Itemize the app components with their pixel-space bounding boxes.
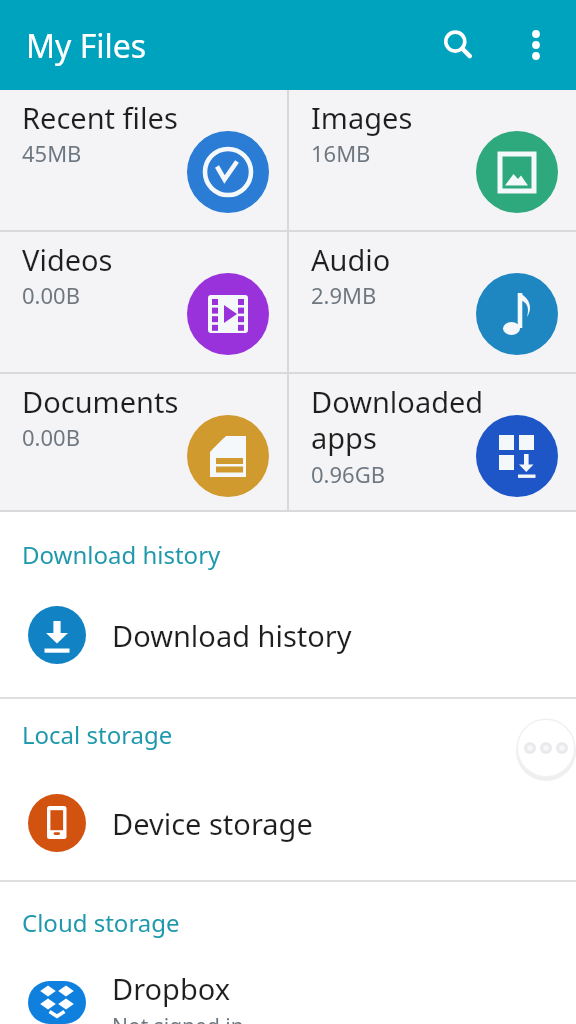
button[interactable]	[434, 21, 482, 69]
button[interactable]: Dropbox	[0, 969, 576, 1024]
button[interactable]: Audio	[289, 232, 576, 372]
staticText: My Files	[26, 24, 147, 68]
staticText: Images	[311, 98, 413, 137]
button[interactable]: Images	[289, 90, 576, 230]
button[interactable]: Documents	[0, 374, 287, 510]
staticText: Cloud storage	[22, 906, 180, 939]
staticText: 45MB	[22, 138, 82, 168]
staticText: 2.9MB	[311, 280, 377, 310]
staticText: Dropbox	[112, 969, 231, 1008]
staticText: Not signed in	[112, 1012, 244, 1024]
staticText: Downloaded apps	[311, 382, 485, 458]
button[interactable]: Recent files	[0, 90, 287, 230]
staticText: Videos	[22, 240, 113, 279]
staticText: Device storage	[112, 804, 313, 843]
button[interactable]: Videos	[0, 232, 287, 372]
button[interactable]: My Files	[26, 24, 147, 68]
button[interactable]	[516, 718, 576, 778]
button[interactable]: Device storage	[0, 794, 576, 852]
button[interactable]	[516, 25, 556, 65]
staticText: 16MB	[311, 138, 371, 168]
button[interactable]: Downloaded apps	[289, 374, 576, 510]
staticText: 0.00B	[22, 422, 80, 452]
staticText: Local storage	[22, 718, 173, 751]
staticText: Download history	[112, 616, 352, 655]
staticText: 0.96GB	[311, 459, 385, 489]
staticText: Audio	[311, 240, 391, 279]
button[interactable]: Download history	[0, 606, 576, 664]
staticText: Download history	[22, 538, 221, 571]
staticText: 0.00B	[22, 280, 80, 310]
staticText: Documents	[22, 382, 179, 421]
staticText: Recent files	[22, 98, 178, 137]
